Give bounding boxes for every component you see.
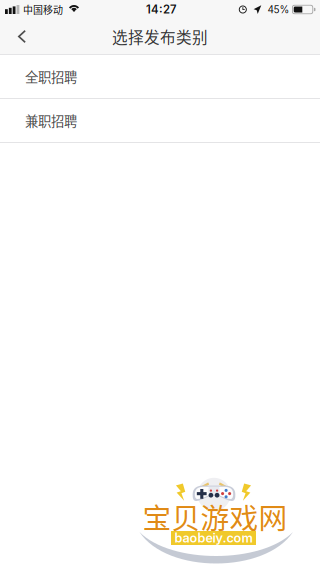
button[interactable]: 全职招聘 (0, 55, 320, 98)
button[interactable]: Back (0, 19, 44, 54)
button[interactable]: 兼职招聘 (0, 99, 320, 142)
staticText: baobeiy.com (174, 530, 252, 546)
staticText: 宝贝游戏网 (142, 496, 287, 537)
staticText: 全职招聘 (25, 67, 77, 86)
staticText: 兼职招聘 (25, 111, 77, 130)
staticText: 14:27 (146, 3, 177, 16)
staticText: 45% (267, 3, 289, 16)
staticText: 中国移动 (23, 2, 63, 17)
staticText: 选择发布类别 (112, 25, 208, 48)
